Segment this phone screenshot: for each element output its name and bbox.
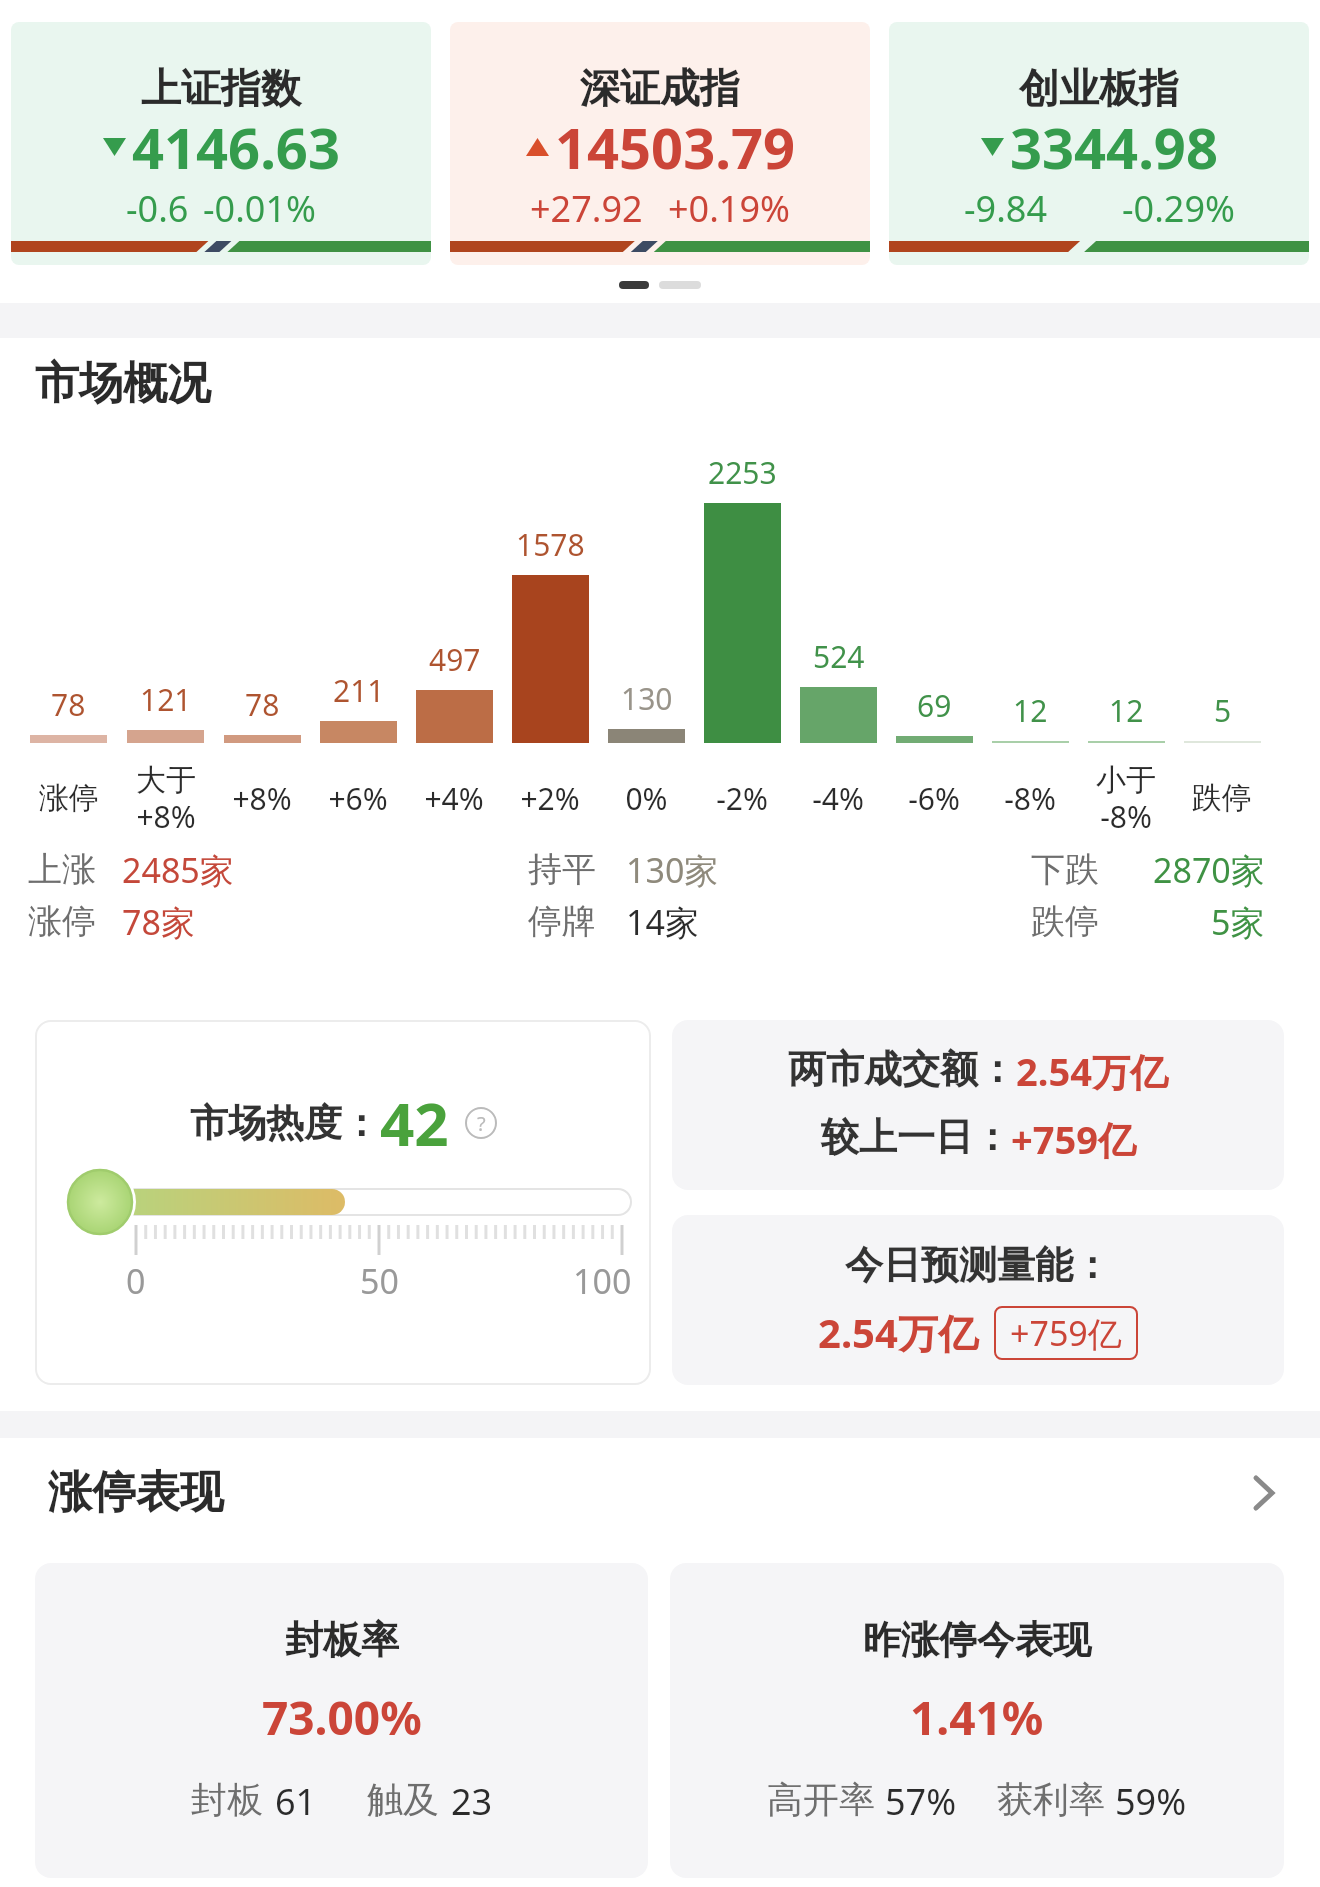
staticText: 61 xyxy=(275,1777,317,1826)
staticText: 524 xyxy=(813,636,865,677)
staticText: 2.54万亿 xyxy=(1016,1045,1168,1097)
staticText: 14家 xyxy=(626,899,699,943)
staticText: 昨涨停今表现 xyxy=(863,1616,1091,1664)
staticText: 14503.79 xyxy=(555,109,795,185)
button[interactable]: 深证成指 xyxy=(450,22,870,265)
staticText: +759亿 xyxy=(1010,1310,1122,1356)
staticText: 0% xyxy=(625,778,668,819)
staticText: +27.92 xyxy=(530,184,643,233)
staticText: 23 xyxy=(451,1777,493,1826)
staticText: 0 xyxy=(126,1258,146,1304)
button[interactable]: 涨停表现 xyxy=(48,1465,1275,1520)
staticText: ? xyxy=(477,1110,486,1137)
staticText: -0.01% xyxy=(203,184,316,233)
staticText: 市场概况 xyxy=(35,356,211,411)
staticText: 小于 -8% xyxy=(1096,761,1156,835)
staticText: 上证指数 xyxy=(141,63,301,113)
staticText: 2870家 xyxy=(1153,847,1265,891)
staticText: 两市成交额： xyxy=(788,1045,1016,1093)
button[interactable]: 今日预测量能： xyxy=(672,1215,1284,1385)
staticText: 涨停 xyxy=(39,779,99,817)
staticText: 1.41% xyxy=(910,1686,1044,1749)
staticText: -2% xyxy=(716,778,768,819)
staticText: 5 xyxy=(1214,690,1232,731)
staticText: 跌停 xyxy=(1031,900,1099,943)
staticText: +0.19% xyxy=(668,184,790,233)
staticText: 上涨 xyxy=(28,848,96,891)
staticText: 3344.98 xyxy=(1010,109,1218,185)
staticText: 78家 xyxy=(122,899,195,943)
staticText: 高开率 xyxy=(767,1777,875,1822)
staticText: +759亿 xyxy=(1011,1113,1136,1165)
staticText: 2.54万亿 xyxy=(818,1305,978,1360)
staticText: -8% xyxy=(1004,778,1056,819)
staticText: 69 xyxy=(917,685,952,726)
staticText: 78 xyxy=(51,684,86,725)
staticText: 12 xyxy=(1109,690,1144,731)
staticText: 持平 xyxy=(528,848,596,891)
button[interactable]: 封板率 xyxy=(35,1563,648,1878)
staticText: -6% xyxy=(908,778,960,819)
staticText: -0.29% xyxy=(1122,184,1235,233)
staticText: -9.84 xyxy=(964,184,1048,233)
staticText: 50 xyxy=(360,1258,399,1304)
staticText: 封板 xyxy=(191,1777,263,1822)
staticText: 57% xyxy=(885,1777,957,1826)
staticText: 2253 xyxy=(708,452,777,493)
staticText: 130 xyxy=(621,678,673,719)
staticText: +2% xyxy=(520,778,580,819)
staticText: 大于 +8% xyxy=(136,761,196,835)
staticText: 211 xyxy=(333,670,385,711)
staticText: -0.6 xyxy=(126,184,189,233)
staticText: -4% xyxy=(812,778,864,819)
staticText: 100 xyxy=(573,1258,632,1304)
staticText: 12 xyxy=(1013,690,1048,731)
staticText: 停牌 xyxy=(528,900,596,943)
staticText: 涨停表现 xyxy=(48,1465,224,1520)
staticText: 下跌 xyxy=(1031,848,1099,891)
button[interactable]: 上证指数 xyxy=(11,22,431,265)
staticText: 今日预测量能： xyxy=(845,1241,1111,1289)
staticText: 1578 xyxy=(516,524,585,565)
staticText: 跌停 xyxy=(1192,779,1252,817)
button[interactable]: 昨涨停今表现 xyxy=(670,1563,1284,1878)
staticText: 较上一日： xyxy=(821,1113,1011,1161)
staticText: 封板率 xyxy=(285,1616,399,1664)
staticText: +8% xyxy=(232,778,292,819)
staticText: 497 xyxy=(429,639,481,680)
staticText: +6% xyxy=(328,778,388,819)
staticText: 42 xyxy=(380,1082,449,1164)
staticText: 市场热度： xyxy=(190,1099,380,1147)
staticText: 78 xyxy=(245,684,280,725)
button[interactable]: 市场热度： xyxy=(35,1020,651,1385)
button[interactable]: 两市成交额： xyxy=(672,1020,1284,1190)
staticText: 121 xyxy=(140,679,192,720)
staticText: 获利率 xyxy=(997,1777,1105,1822)
button[interactable]: 创业板指 xyxy=(889,22,1309,265)
staticText: 59% xyxy=(1115,1777,1187,1826)
staticText: 130家 xyxy=(626,847,719,891)
staticText: 涨停 xyxy=(28,900,96,943)
staticText: 2485家 xyxy=(122,847,234,891)
staticText: +4% xyxy=(424,778,484,819)
staticText: 创业板指 xyxy=(1019,63,1179,113)
staticText: 5家 xyxy=(1211,899,1265,943)
staticText: 4146.63 xyxy=(132,109,340,185)
staticText: 73.00% xyxy=(262,1686,422,1749)
staticText: 深证成指 xyxy=(580,63,740,113)
staticText: 触及 xyxy=(367,1777,439,1822)
